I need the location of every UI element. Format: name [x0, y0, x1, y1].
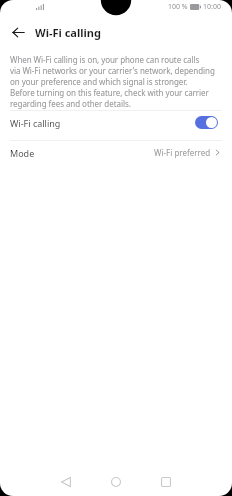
button[interactable]: Back [5, 20, 31, 44]
button[interactable]: Back [46, 477, 86, 487]
staticText: Mode [10, 147, 35, 159]
button[interactable]: Wi-Fi calling [0, 111, 232, 140]
staticText: When Wi-Fi calling is on, your phone can… [10, 54, 224, 109]
staticText: Wi-Fi preferred [154, 147, 211, 158]
staticText: 100 % [168, 2, 188, 12]
button[interactable]: Home [96, 477, 136, 487]
staticText: Wi-Fi calling [35, 25, 101, 40]
button[interactable]: Recents [146, 477, 186, 487]
staticText: 10:00 [203, 2, 221, 12]
button[interactable]: Mode [0, 141, 232, 170]
staticText: Wi-Fi calling [10, 117, 61, 129]
